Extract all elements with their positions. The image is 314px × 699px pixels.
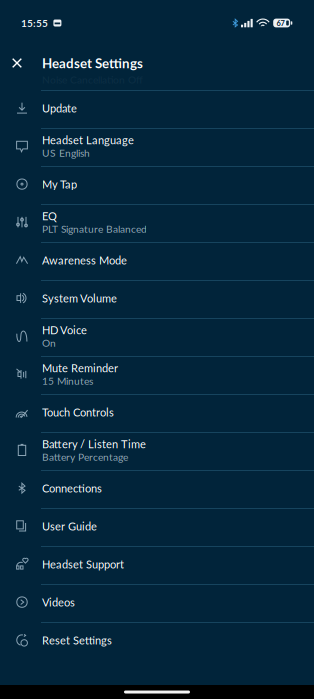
- staticText: Reset Settings: [42, 633, 112, 647]
- staticText: Connections: [42, 481, 102, 495]
- button[interactable]: Videos: [0, 584, 314, 622]
- button[interactable]: HD Voice: [0, 318, 314, 356]
- staticText: Headset Support: [42, 557, 124, 571]
- button[interactable]: Touch Controls: [0, 394, 314, 432]
- button[interactable]: Connections: [0, 470, 314, 508]
- button[interactable]: Battery / Listen Time: [0, 432, 314, 470]
- staticText: EQ: [42, 209, 57, 223]
- staticText: 67: [276, 18, 284, 27]
- staticText: HD Voice: [42, 323, 87, 337]
- button[interactable]: Mute Reminder: [0, 356, 314, 394]
- button[interactable]: Awareness Mode: [0, 242, 314, 280]
- button[interactable]: Update: [0, 90, 314, 128]
- button[interactable]: System Volume: [0, 280, 314, 318]
- staticText: User Guide: [42, 519, 97, 533]
- staticText: Mute Reminder: [42, 361, 118, 375]
- staticText: Headset Language: [42, 133, 134, 147]
- button[interactable]: Headset Support: [0, 546, 314, 584]
- staticText: PLT Signature Balanced: [42, 223, 147, 235]
- staticText: 15 Minutes: [42, 375, 93, 387]
- button[interactable]: EQ: [0, 204, 314, 242]
- button[interactable]: User Guide: [0, 508, 314, 546]
- staticText: Awareness Mode: [42, 253, 127, 267]
- staticText: On: [42, 337, 56, 349]
- staticText: 15:55: [21, 17, 48, 29]
- staticText: Videos: [42, 595, 75, 609]
- staticText: Battery / Listen Time: [42, 437, 146, 451]
- staticText: Battery Percentage: [42, 451, 128, 463]
- staticText: Headset Settings: [42, 55, 143, 71]
- button[interactable]: Headset Language: [0, 128, 314, 166]
- staticText: US English: [42, 147, 90, 159]
- staticText: Update: [42, 101, 77, 115]
- button[interactable]: Close: [0, 52, 42, 74]
- staticText: Touch Controls: [42, 405, 114, 419]
- button[interactable]: Reset Settings: [0, 622, 314, 660]
- staticText: My Tap: [42, 177, 77, 191]
- staticText: System Volume: [42, 291, 117, 305]
- button[interactable]: My Tap: [0, 166, 314, 204]
